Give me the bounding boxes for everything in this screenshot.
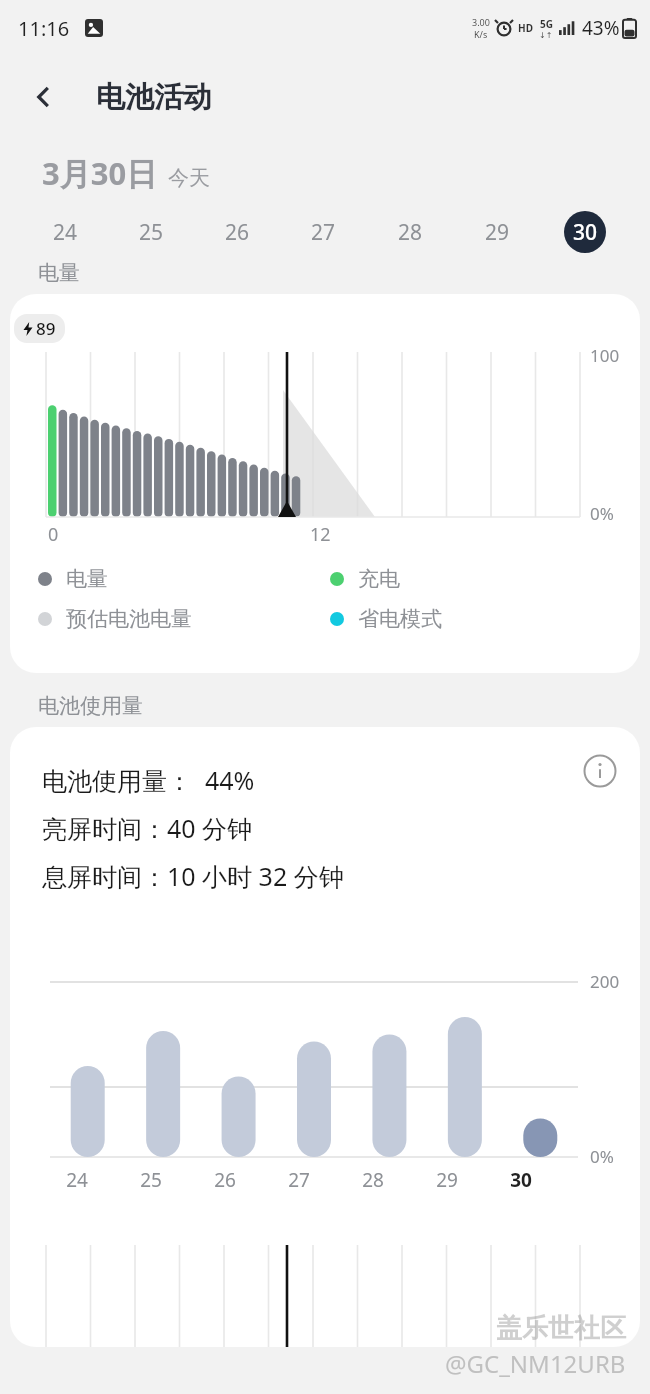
- staticText: 24: [53, 218, 78, 247]
- staticText: 89: [36, 317, 56, 340]
- staticText: 电量: [66, 566, 108, 592]
- staticText: 26: [214, 1167, 236, 1193]
- staticText: 25: [140, 1167, 162, 1193]
- staticText: 24: [66, 1167, 88, 1193]
- staticText: 100: [590, 344, 620, 367]
- button[interactable]: 29: [454, 210, 541, 254]
- staticText: 充电: [358, 566, 400, 592]
- staticText: 电量: [38, 260, 80, 286]
- staticText: 200: [590, 970, 620, 993]
- button[interactable]: 25: [108, 210, 194, 254]
- staticText: 3月30日: [42, 152, 158, 194]
- staticText: 预估电池电量: [66, 606, 192, 632]
- staticText: 27: [311, 218, 336, 247]
- staticText: 3.00: [472, 16, 490, 28]
- staticText: 盖乐世社区: [496, 1312, 626, 1345]
- staticText: 29: [436, 1167, 458, 1193]
- staticText: 今天: [168, 165, 210, 191]
- staticText: 12: [310, 522, 331, 547]
- staticText: 省电模式: [358, 606, 442, 632]
- staticText: 29: [485, 218, 510, 247]
- staticText: 0: [48, 522, 59, 547]
- staticText: 电池活动: [96, 79, 212, 116]
- staticText: HD: [518, 21, 533, 35]
- staticText: 电池使用量: [38, 693, 143, 719]
- button[interactable]: 89: [10, 294, 640, 673]
- button[interactable]: 27: [280, 210, 367, 254]
- button[interactable]: 26: [194, 210, 280, 254]
- staticText: 5G: [540, 17, 553, 31]
- button[interactable]: 24: [22, 210, 108, 254]
- staticText: 43%: [582, 15, 620, 41]
- button[interactable]: Back: [22, 75, 66, 119]
- staticText: 27: [288, 1167, 310, 1193]
- staticText: 11:16: [18, 15, 70, 42]
- staticText: 26: [225, 218, 250, 247]
- button[interactable]: 28: [367, 210, 454, 254]
- staticText: K/s: [474, 28, 488, 40]
- staticText: 电池使用量： 44%: [42, 763, 255, 797]
- button[interactable]: Information: [578, 749, 622, 793]
- staticText: 0%: [590, 1145, 614, 1168]
- staticText: 28: [362, 1167, 384, 1193]
- button[interactable]: 电池使用量： 44%: [10, 727, 640, 1347]
- staticText: 30: [573, 218, 598, 247]
- staticText: @GC_NM12URB: [445, 1347, 626, 1380]
- staticText: 0%: [590, 502, 614, 525]
- staticText: 息屏时间：10 小时 32 分钟: [42, 859, 344, 893]
- staticText: 25: [139, 218, 164, 247]
- staticText: 28: [398, 218, 423, 247]
- button[interactable]: 30: [541, 210, 628, 254]
- staticText: 亮屏时间：40 分钟: [42, 811, 253, 845]
- staticText: 30: [510, 1167, 532, 1193]
- staticText: ↓↑: [539, 31, 553, 40]
